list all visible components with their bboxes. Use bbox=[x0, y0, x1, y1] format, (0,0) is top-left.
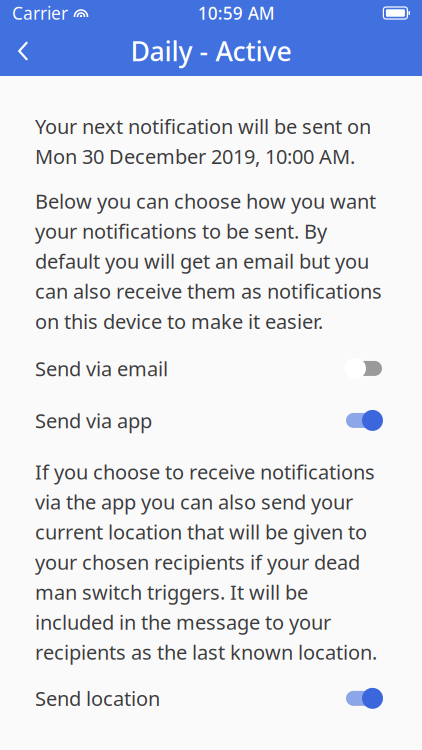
staticText: Send via email bbox=[35, 355, 168, 382]
button[interactable]: Back bbox=[0, 26, 46, 76]
staticText: Carrier bbox=[12, 1, 68, 24]
staticText: Below you can choose how you want your n… bbox=[35, 188, 382, 334]
button[interactable]: Send via email bbox=[35, 352, 387, 384]
button[interactable]: Send via app bbox=[35, 404, 387, 436]
staticText: Send via app bbox=[35, 407, 152, 434]
button[interactable]: Send location bbox=[35, 682, 387, 714]
staticText: Your next notification will be sent on M… bbox=[35, 113, 371, 170]
staticText: If you choose to receive notifications v… bbox=[35, 458, 377, 665]
staticText: 10:59 AM bbox=[198, 1, 275, 24]
staticText: Daily - Active bbox=[130, 33, 291, 69]
staticText: Send location bbox=[35, 685, 160, 712]
